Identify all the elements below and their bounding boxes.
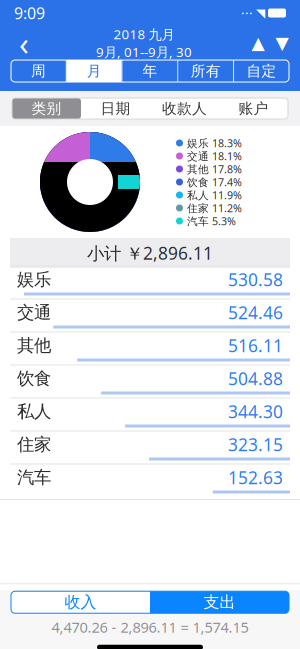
button[interactable]: 月 [67, 60, 122, 82]
button[interactable]: 年 [123, 60, 177, 82]
staticText: 524.46 [228, 301, 283, 324]
staticText: 类别 [31, 99, 61, 117]
staticText: 住家 11.2% [187, 201, 242, 215]
button[interactable]: 账户 [219, 98, 288, 119]
staticText: 收入 [64, 592, 96, 612]
staticText: 其他 [17, 335, 51, 356]
staticText: 私人 11.9% [187, 188, 242, 202]
staticText: 日期 [100, 99, 130, 117]
staticText: ▲ [251, 33, 264, 53]
button[interactable]: Next period [270, 29, 294, 57]
staticText: 收款人 [162, 99, 207, 117]
staticText: 住家 [17, 434, 51, 455]
staticText: 私人 [17, 401, 51, 422]
staticText: 2018 九月 [113, 25, 174, 43]
staticText: 530.58 [228, 268, 283, 291]
button[interactable]: 私人 [0, 400, 300, 433]
button[interactable]: 自定 [234, 60, 289, 82]
button[interactable]: 日期 [81, 98, 150, 119]
staticText: 汽车 [17, 467, 51, 488]
staticText: 娱乐 18.3% [187, 136, 242, 150]
staticText: 账户 [238, 99, 268, 117]
staticText: 饮食 17.4% [187, 175, 242, 189]
staticText: 其他 17.8% [187, 162, 242, 176]
staticText: 4,470.26 - 2,896.11 = 1,574.15 [51, 617, 248, 637]
staticText: 汽车 5.3% [187, 214, 236, 228]
staticText: 交通 [17, 302, 51, 323]
staticText: 饮食 [17, 368, 51, 389]
button[interactable]: 住家 [0, 433, 300, 466]
staticText: 年 [142, 62, 157, 80]
button[interactable]: Previous period [246, 29, 270, 57]
button[interactable]: 收入 [11, 591, 150, 613]
staticText: ··· [241, 4, 253, 22]
button[interactable]: 所有 [178, 60, 233, 82]
staticText: ◥ [256, 6, 265, 20]
staticText: ‹ [19, 22, 29, 64]
button[interactable]: 支出 [150, 591, 289, 613]
staticText: 周 [31, 62, 46, 80]
button[interactable]: 其他 [0, 334, 300, 367]
staticText: 504.88 [228, 367, 283, 390]
button[interactable]: 汽车 [0, 466, 300, 499]
button[interactable]: 周 [11, 60, 66, 82]
staticText: 支出 [203, 592, 235, 612]
staticText: ▼ [275, 33, 288, 53]
button[interactable]: 类别 [12, 98, 81, 119]
staticText: 月 [87, 62, 102, 80]
staticText: 344.30 [228, 400, 283, 423]
staticText: 152.63 [228, 466, 283, 489]
button[interactable]: Back [6, 27, 42, 59]
staticText: 所有 [191, 62, 221, 80]
button[interactable]: 娱乐 [0, 268, 300, 301]
staticText: 516.11 [228, 334, 283, 357]
staticText: 自定 [247, 62, 277, 80]
staticText: 交通 18.1% [187, 149, 242, 163]
staticText: 小计 ￥2,896.11 [87, 241, 213, 264]
button[interactable]: 交通 [0, 301, 300, 334]
button[interactable]: 收款人 [150, 98, 219, 119]
button[interactable]: 饮食 [0, 367, 300, 400]
staticText: 娱乐 [17, 269, 51, 290]
staticText: 323.15 [228, 433, 283, 456]
staticText: 9月, 01--9月, 30 [96, 43, 192, 61]
staticText: 9:09 [14, 2, 45, 24]
